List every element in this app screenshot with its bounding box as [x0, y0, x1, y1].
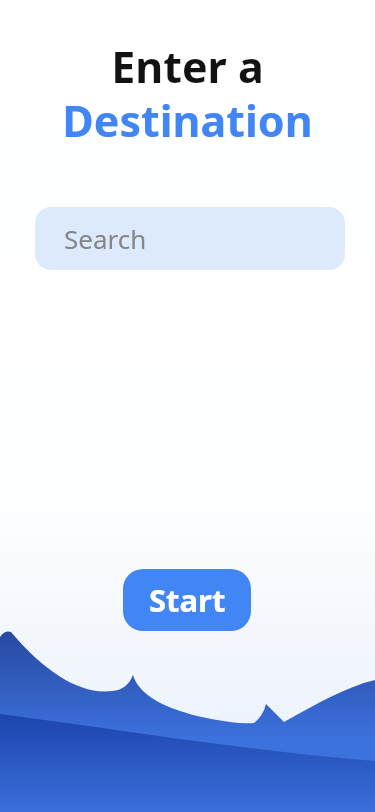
button[interactable]: Start — [123, 569, 251, 631]
staticText: Start — [149, 579, 226, 621]
staticText: Search — [64, 221, 147, 256]
staticText: Destination — [0, 91, 375, 150]
button[interactable]: Search — [35, 207, 345, 270]
staticText: Enter a — [0, 37, 375, 96]
